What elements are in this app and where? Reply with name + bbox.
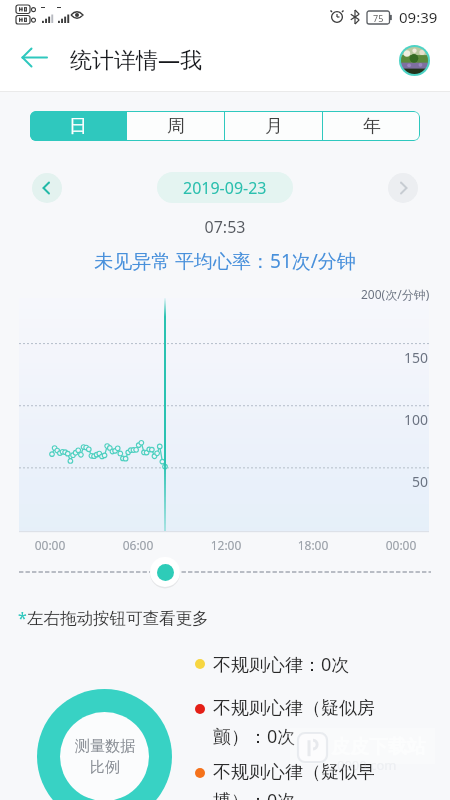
staticText: 2019-09-23 [183,177,267,199]
button[interactable]: Previous day [32,173,62,203]
staticText: 月 [265,115,283,138]
button[interactable]: 2019-09-23 [157,172,293,203]
staticText: 年 [363,115,381,138]
button[interactable]: Profile [399,45,430,76]
staticText: 150 [404,348,429,367]
staticText: 12:00 [204,537,248,553]
button[interactable]: 日 [30,111,126,141]
staticText: 左右拖动按钮可查看更多 [27,608,209,629]
staticText: 00:00 [28,537,72,553]
staticText: 75 [373,12,384,24]
staticText: 18:00 [291,537,335,553]
button[interactable]: Next day [388,173,418,203]
button[interactable]: 月 [225,111,322,141]
staticText: 测量数据 [75,737,135,756]
staticText: 50 [412,472,429,491]
staticText: 周 [167,115,185,138]
staticText: 日 [69,115,87,138]
staticText: 比例 [90,758,120,777]
staticText: * [18,607,27,629]
button[interactable]: Back [14,37,54,77]
button[interactable]: 年 [323,111,420,141]
staticText: 07:53 [0,216,450,238]
staticText: 100 [404,410,429,429]
staticText: 统计详情—我 [70,44,203,74]
staticText: 不规则心律（疑似早 搏）：0次 [213,761,375,800]
button[interactable]: 周 [127,111,224,141]
button[interactable]: Drag handle [150,557,180,587]
staticText: 未见异常 平均心率：51次/分钟 [0,248,450,274]
staticText: 09:39 [399,7,438,27]
staticText: 不规则心律：0次 [213,652,350,677]
staticText: 不规则心律（疑似房 颤）：0次 [213,697,375,748]
staticText: 06:00 [116,537,160,553]
staticText: 00:00 [379,537,423,553]
staticText: 200(次/分钟) [361,286,430,302]
staticText: 0000.com [337,756,397,774]
